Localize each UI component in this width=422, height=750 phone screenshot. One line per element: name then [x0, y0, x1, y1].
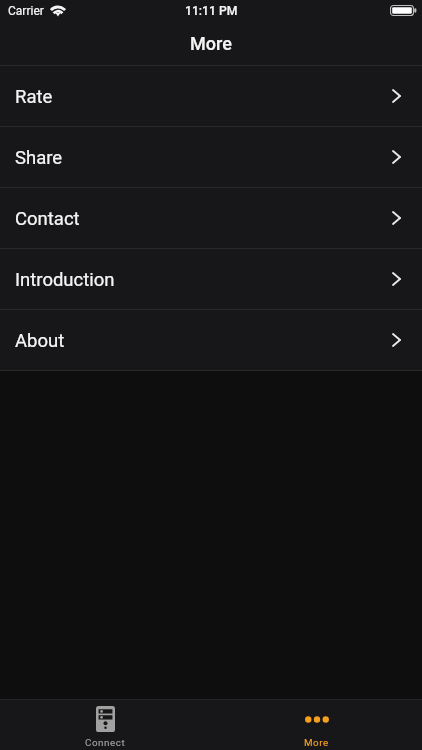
button[interactable]: About — [0, 310, 422, 370]
staticText: Share — [15, 147, 63, 169]
staticText: Contact — [15, 208, 80, 230]
button[interactable]: Rate — [0, 66, 422, 126]
button[interactable]: More — [211, 700, 422, 750]
staticText: 11:11 PM — [185, 4, 238, 18]
button[interactable]: Connect — [0, 700, 211, 750]
staticText: About — [15, 330, 65, 352]
staticText: Introduction — [15, 269, 115, 291]
staticText: More — [190, 33, 232, 54]
other: More — [305, 716, 329, 723]
button[interactable]: Introduction — [0, 249, 422, 309]
other: Connect — [96, 706, 115, 732]
button[interactable]: Contact — [0, 188, 422, 248]
staticText: Rate — [15, 86, 53, 108]
button[interactable]: Share — [0, 127, 422, 187]
staticText: Connect — [85, 737, 126, 748]
staticText: More — [304, 737, 329, 748]
staticText: Carrier — [8, 4, 44, 18]
